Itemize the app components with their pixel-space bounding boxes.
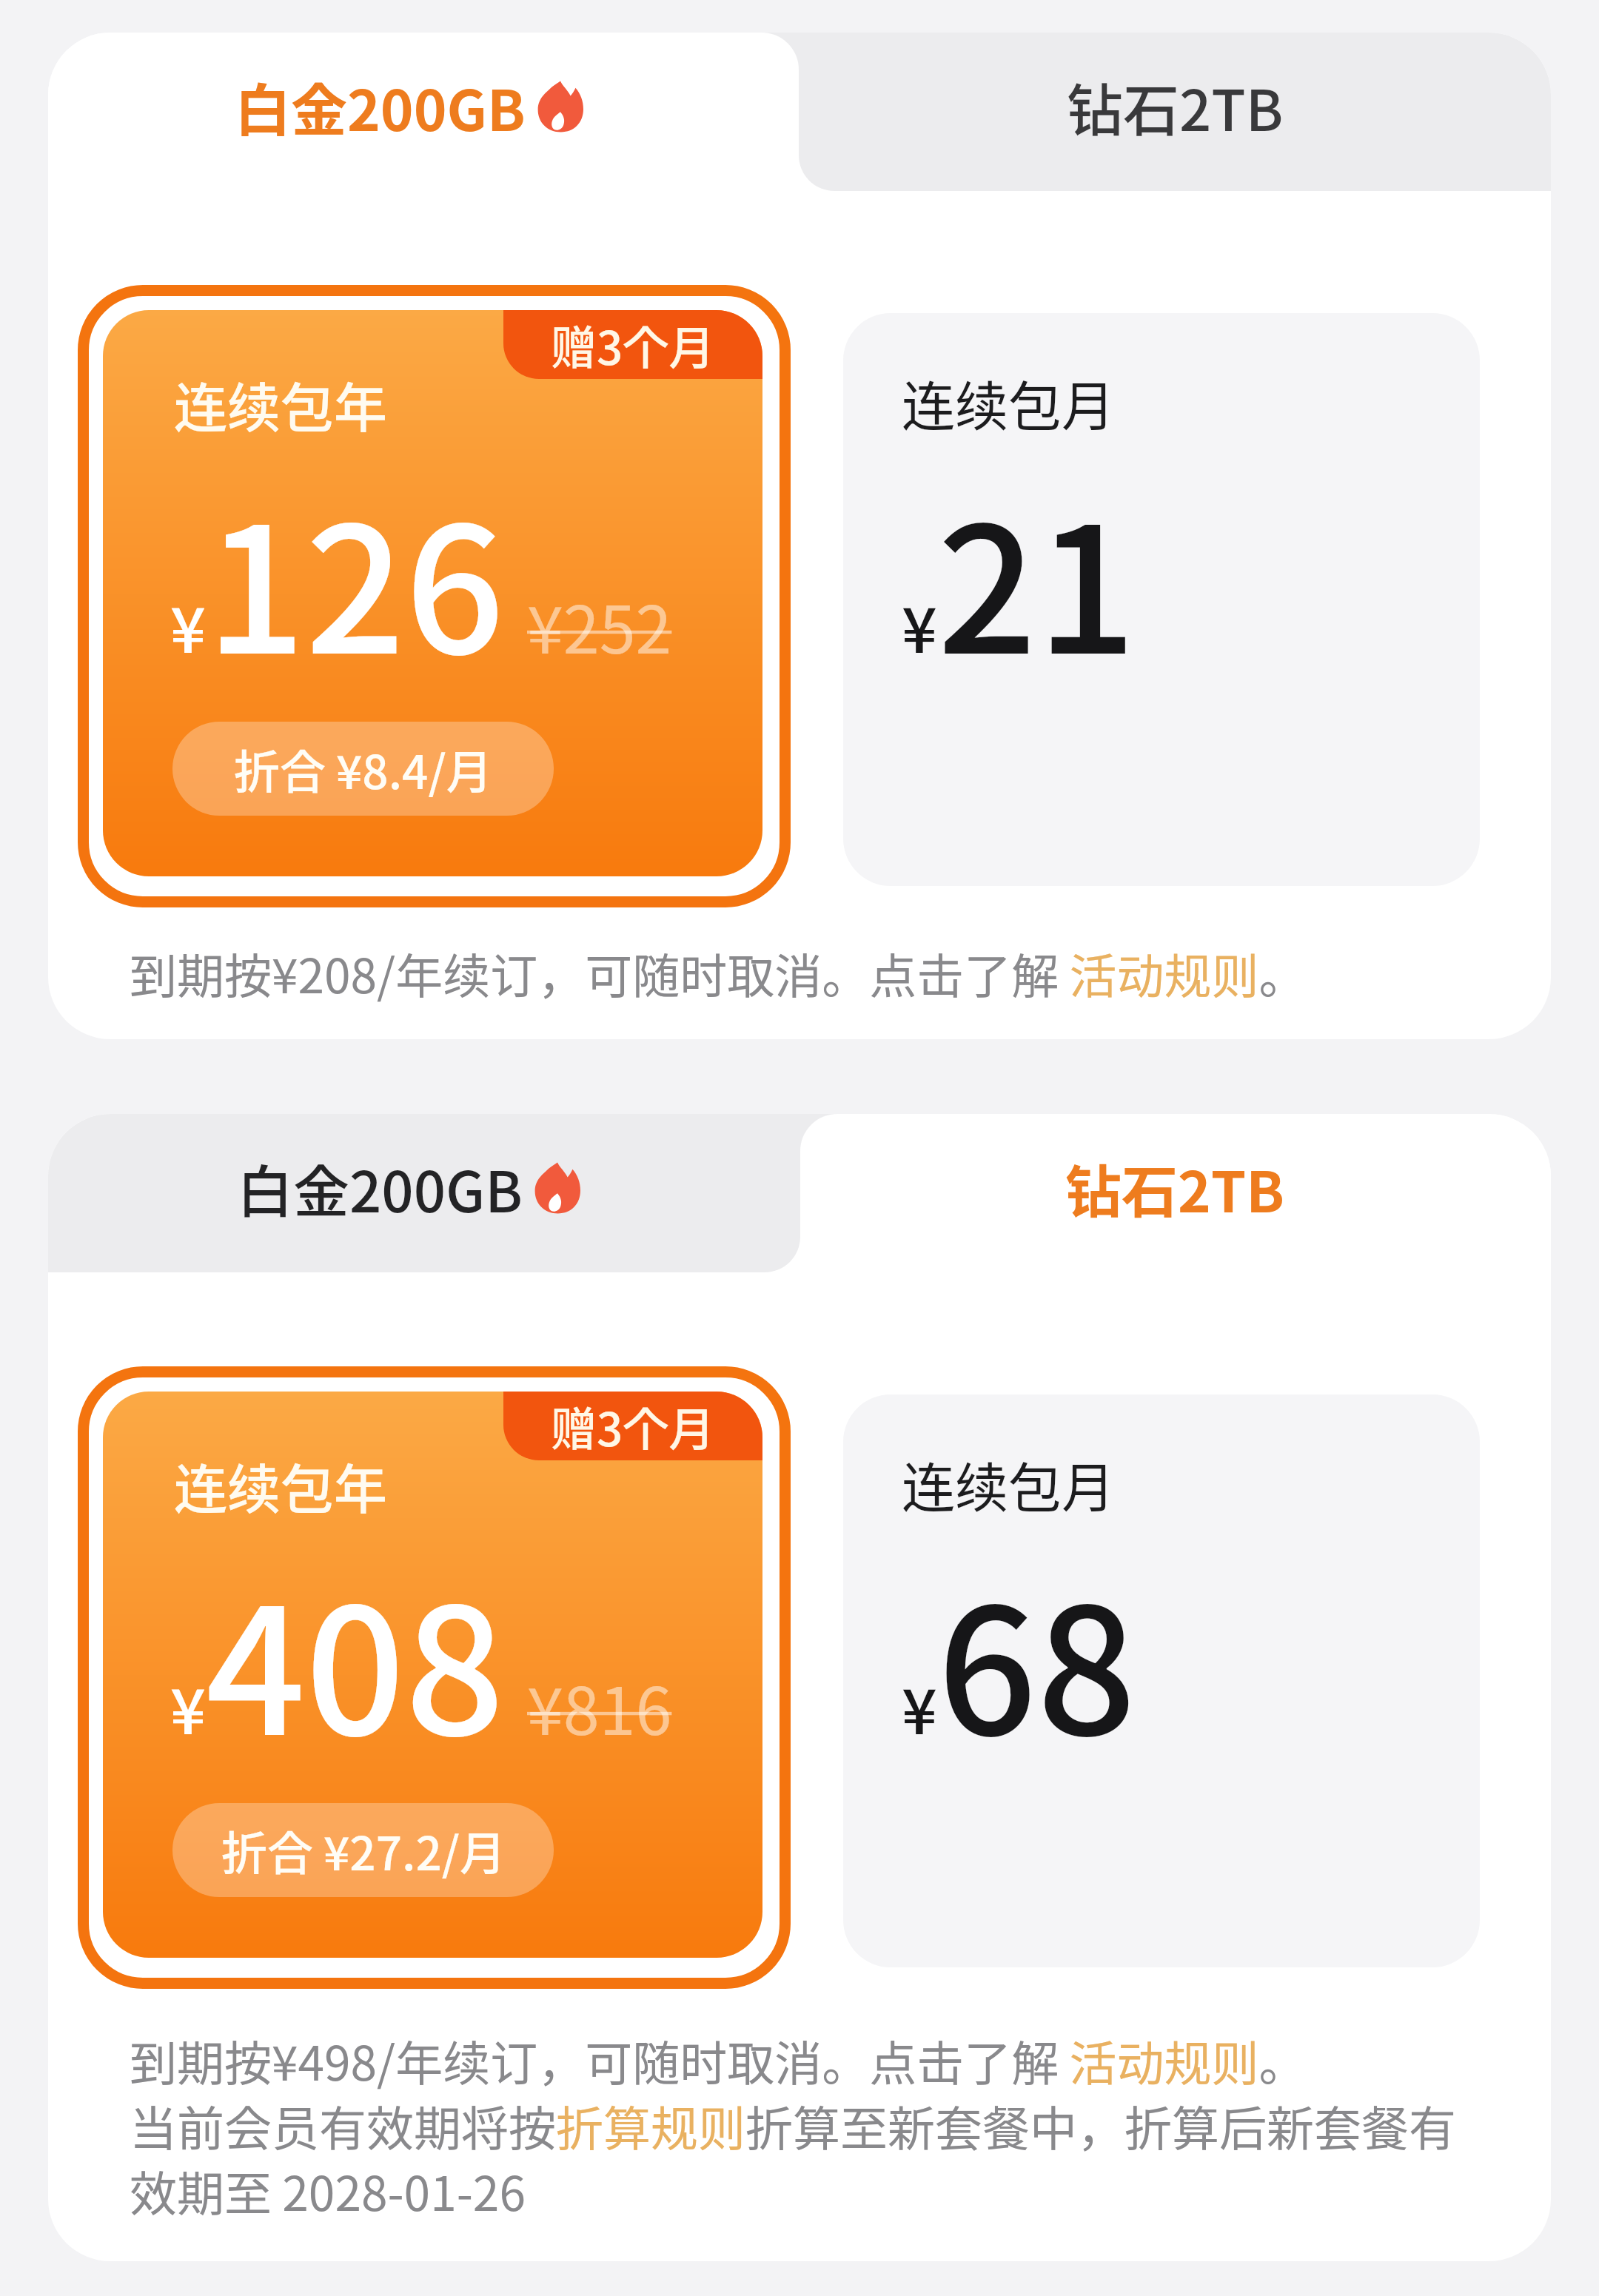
button[interactable] bbox=[48, 1114, 800, 1272]
staticText: 钻石2TB bbox=[1067, 66, 1284, 147]
button[interactable] bbox=[799, 33, 1551, 191]
staticText: 连续包年 bbox=[174, 1446, 388, 1523]
button[interactable] bbox=[843, 1394, 1480, 1967]
staticText: 白金200GB bbox=[237, 1147, 523, 1229]
staticText: 126 bbox=[206, 451, 505, 704]
button[interactable] bbox=[800, 1114, 1551, 1273]
staticText: ¥252 bbox=[527, 578, 672, 672]
staticText: 赠3个月 bbox=[551, 312, 715, 378]
staticText: 效期至 2028-01-26 bbox=[130, 2156, 526, 2225]
button[interactable] bbox=[843, 313, 1480, 886]
staticText: ¥ bbox=[170, 1662, 206, 1753]
button[interactable] bbox=[48, 33, 799, 192]
staticText: 68 bbox=[937, 1532, 1137, 1785]
staticText: 钻石2TB bbox=[1065, 1147, 1285, 1229]
staticText: 白金200GB bbox=[235, 66, 526, 147]
staticText: ¥ bbox=[902, 1662, 937, 1753]
staticText: 21 bbox=[937, 451, 1137, 704]
staticText: 当前会员有效期将按折算规则折算至新套餐中，折算后新套餐有 bbox=[130, 2091, 1456, 2160]
staticText: 到期按¥498/年续订，可随时取消。点击了解 活动规则。 bbox=[130, 2026, 1307, 2095]
staticText: 连续包月 bbox=[902, 363, 1116, 440]
staticText: 连续包月 bbox=[902, 1445, 1116, 1522]
button[interactable] bbox=[103, 1392, 762, 1958]
staticText: 408 bbox=[206, 1532, 505, 1785]
staticText: ¥816 bbox=[527, 1659, 672, 1753]
staticText: 赠3个月 bbox=[551, 1393, 715, 1460]
staticText: 折合 ¥27.2/月 bbox=[221, 1817, 506, 1884]
staticText: 连续包年 bbox=[174, 365, 388, 442]
staticText: 折合 ¥8.4/月 bbox=[234, 736, 492, 802]
button[interactable] bbox=[103, 310, 762, 876]
staticText: ¥ bbox=[170, 581, 206, 671]
staticText: ¥ bbox=[902, 581, 937, 671]
staticText: 到期按¥208/年续订，可随时取消。点击了解 活动规则。 bbox=[130, 939, 1307, 1007]
